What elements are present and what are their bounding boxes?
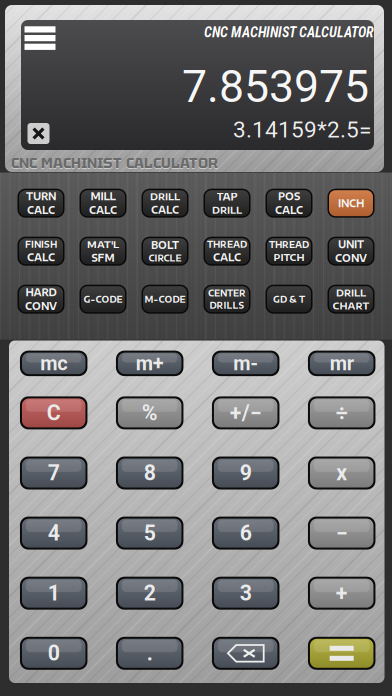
staticText: INCH xyxy=(338,197,364,209)
button[interactable]: Clear xyxy=(27,123,49,144)
staticText: 6 xyxy=(240,521,252,546)
button[interactable]: + xyxy=(308,577,375,610)
staticText: CNC MACHINIST CALCULATOR xyxy=(204,24,374,41)
button[interactable]: 2 xyxy=(116,577,183,610)
button[interactable]: THREAD CALC xyxy=(203,237,250,266)
staticText: DRILL xyxy=(150,190,180,202)
button[interactable]: CENTER DRILLS xyxy=(203,285,250,314)
button[interactable]: BOLT CIRCLE xyxy=(141,237,188,266)
staticText: PITCH xyxy=(273,251,304,263)
button[interactable]: HARD CONV xyxy=(17,285,64,314)
staticText: 4 xyxy=(48,521,60,546)
staticText: THREAD xyxy=(207,239,247,250)
button[interactable]: M-CODE xyxy=(141,285,188,314)
staticText: CALC xyxy=(89,204,117,216)
staticText: G-CODE xyxy=(83,294,122,305)
button[interactable]: 5 xyxy=(116,517,183,550)
staticText: MAT'L xyxy=(87,238,119,250)
staticText: CALC xyxy=(213,251,241,263)
staticText: CNC MACHINIST CALCULATOR xyxy=(11,153,218,172)
staticText: x xyxy=(336,460,347,485)
staticText: DRILLS xyxy=(209,300,244,311)
staticText: CNC MACHINIST CALCULATOR xyxy=(11,154,218,173)
button[interactable]: DRILL CHART xyxy=(327,285,374,314)
button[interactable]: Backspace xyxy=(212,637,279,670)
staticText: DRILL xyxy=(212,204,242,216)
staticText: % xyxy=(142,400,158,425)
staticText: CENTER xyxy=(208,288,246,298)
button[interactable]: TURN CALC xyxy=(17,189,64,218)
button[interactable]: 0 xyxy=(20,637,87,670)
staticText: BOLT xyxy=(151,239,179,251)
staticText: mr xyxy=(330,352,354,375)
staticText: CONV xyxy=(335,252,367,264)
button[interactable]: POS CALC xyxy=(265,189,312,218)
button[interactable]: MILL CALC xyxy=(79,189,126,218)
staticText: m- xyxy=(233,352,258,375)
button[interactable]: FINISH CALC xyxy=(17,237,64,266)
staticText: CALC xyxy=(27,204,55,216)
staticText: 7.853975 xyxy=(182,60,369,113)
staticText: CALC xyxy=(275,204,303,216)
staticText: GD & T xyxy=(273,294,305,305)
staticText: +/− xyxy=(230,400,262,425)
staticText: TAP xyxy=(216,190,237,203)
staticText: CALC xyxy=(27,251,55,263)
staticText: CIRCLE xyxy=(148,253,181,263)
button[interactable]: mr xyxy=(308,351,375,376)
staticText: 9 xyxy=(240,460,252,485)
button[interactable]: UNIT CONV xyxy=(327,237,374,266)
button[interactable]: m- xyxy=(212,351,279,376)
staticText: SFM xyxy=(91,252,114,264)
button[interactable]: ÷ xyxy=(308,396,375,429)
button[interactable]: % xyxy=(116,396,183,429)
staticText: 2 xyxy=(144,581,156,606)
staticText: mc xyxy=(40,352,67,375)
button[interactable]: Menu xyxy=(19,21,60,55)
button[interactable]: INCH xyxy=(327,189,374,218)
button[interactable]: DRILL CALC xyxy=(141,189,188,218)
button[interactable]: − xyxy=(308,517,375,550)
staticText: . xyxy=(147,641,153,666)
button[interactable]: . xyxy=(116,637,183,670)
button[interactable]: Equals xyxy=(308,637,375,670)
staticText: m+ xyxy=(136,352,164,375)
staticText: MILL xyxy=(90,190,115,202)
button[interactable]: 4 xyxy=(20,517,87,550)
button[interactable]: MAT'L SFM xyxy=(79,237,126,266)
staticText: 0 xyxy=(48,641,60,666)
staticText: + xyxy=(336,581,348,606)
staticText: UNIT xyxy=(338,238,364,250)
staticText: 3.14159*2.5= xyxy=(233,116,371,143)
button[interactable]: 7 xyxy=(20,456,87,489)
button[interactable]: 1 xyxy=(20,577,87,610)
staticText: POS xyxy=(278,190,300,202)
button[interactable]: C xyxy=(20,396,87,429)
button[interactable]: 9 xyxy=(212,456,279,489)
staticText: HARD xyxy=(25,286,56,298)
button[interactable]: 3 xyxy=(212,577,279,610)
button[interactable]: mc xyxy=(20,351,87,376)
staticText: − xyxy=(336,521,348,546)
staticText: C xyxy=(47,400,61,425)
button[interactable]: m+ xyxy=(116,351,183,376)
button[interactable]: 8 xyxy=(116,456,183,489)
staticText: 7 xyxy=(48,460,60,485)
button[interactable]: 6 xyxy=(212,517,279,550)
staticText: FINISH xyxy=(25,239,57,250)
staticText: CONV xyxy=(25,300,57,312)
button[interactable]: +/− xyxy=(212,396,279,429)
button[interactable]: TAP DRILL xyxy=(203,189,250,218)
button[interactable]: G-CODE xyxy=(79,285,126,314)
staticText: TURN xyxy=(26,190,56,202)
button[interactable]: x xyxy=(308,456,375,489)
staticText: CHART xyxy=(332,300,369,312)
button[interactable]: THREAD PITCH xyxy=(265,237,312,266)
staticText: 8 xyxy=(144,460,156,485)
staticText: M-CODE xyxy=(144,294,185,305)
staticText: 1 xyxy=(48,581,60,606)
staticText: 5 xyxy=(144,521,156,546)
staticText: CALC xyxy=(151,204,179,216)
button[interactable]: GD & T xyxy=(265,285,312,314)
staticText: ÷ xyxy=(336,400,348,425)
